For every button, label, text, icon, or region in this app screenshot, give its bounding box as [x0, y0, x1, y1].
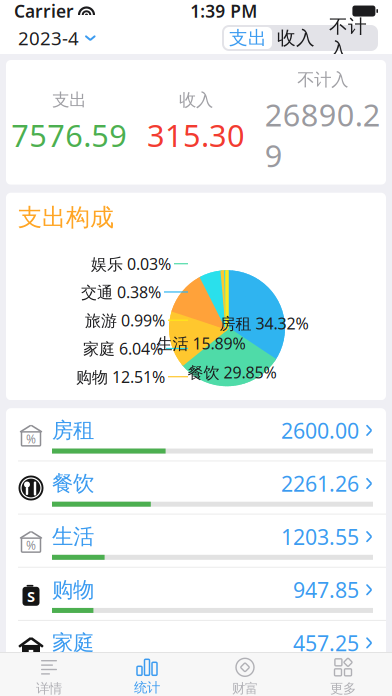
button[interactable]: 2023-4	[14, 22, 101, 54]
staticText: 不计入	[297, 69, 348, 90]
staticText: 交通 0.38%	[81, 281, 161, 302]
staticText: 餐饮	[52, 470, 94, 497]
staticText: 1203.55	[281, 522, 359, 551]
staticText: %	[26, 431, 36, 447]
button[interactable]: 收入	[272, 27, 320, 49]
staticText: 315.30	[147, 115, 245, 155]
button[interactable]: 财富	[196, 651, 294, 696]
staticText: 生活 15.89%	[156, 333, 245, 354]
staticText: 2600.00	[281, 416, 359, 444]
staticText: 旅游	[52, 683, 94, 696]
staticText: 2261.26	[281, 469, 359, 498]
staticText: 购物	[52, 577, 94, 603]
button[interactable]: 家庭	[6, 621, 386, 674]
button[interactable]: S	[6, 568, 386, 621]
staticText: 房租	[52, 417, 94, 443]
button[interactable]: 支出	[224, 27, 272, 49]
button[interactable]: 不计入	[320, 27, 376, 49]
staticText: 支出	[229, 26, 267, 49]
staticText: 娱乐 0.03%	[91, 253, 171, 274]
staticText: 457.25	[293, 629, 359, 657]
staticText: Carrier	[14, 0, 74, 22]
staticText: 支出构成	[18, 203, 114, 232]
staticText: 购物 12.51%	[76, 366, 165, 387]
staticText: 26890.29	[265, 94, 381, 176]
staticText: 2023-4	[18, 26, 79, 50]
staticText: 统计	[134, 679, 160, 696]
staticText: 收入	[277, 26, 315, 49]
button[interactable]: %	[6, 514, 386, 568]
staticText: 财富	[232, 680, 258, 696]
button[interactable]: 统计	[98, 652, 196, 696]
staticText: 家庭	[52, 630, 94, 656]
staticText: 1:39 PM	[190, 0, 257, 22]
staticText: 不计入	[329, 15, 367, 61]
staticText: %	[26, 537, 36, 553]
staticText: 更多	[330, 680, 356, 696]
button[interactable]: 更多	[294, 651, 392, 696]
staticText: 支出	[52, 89, 86, 111]
staticText: 75.00	[305, 682, 359, 696]
staticText: 生活	[52, 523, 94, 550]
button[interactable]: 旅游	[6, 674, 386, 696]
button[interactable]: 详情	[0, 651, 98, 696]
staticText: 家庭 6.04%	[83, 338, 163, 359]
button[interactable]: %	[6, 408, 386, 461]
staticText: 餐饮 29.85%	[187, 362, 276, 383]
staticText: 7576.59	[11, 115, 127, 155]
staticText: S	[27, 586, 35, 606]
staticText: 房租 34.32%	[219, 313, 308, 334]
button[interactable]: 餐饮	[6, 461, 386, 514]
staticText: 旅游 0.99%	[85, 310, 165, 331]
staticText: 详情	[36, 680, 62, 696]
staticText: 947.85	[293, 576, 359, 604]
staticText: 收入	[179, 89, 213, 111]
